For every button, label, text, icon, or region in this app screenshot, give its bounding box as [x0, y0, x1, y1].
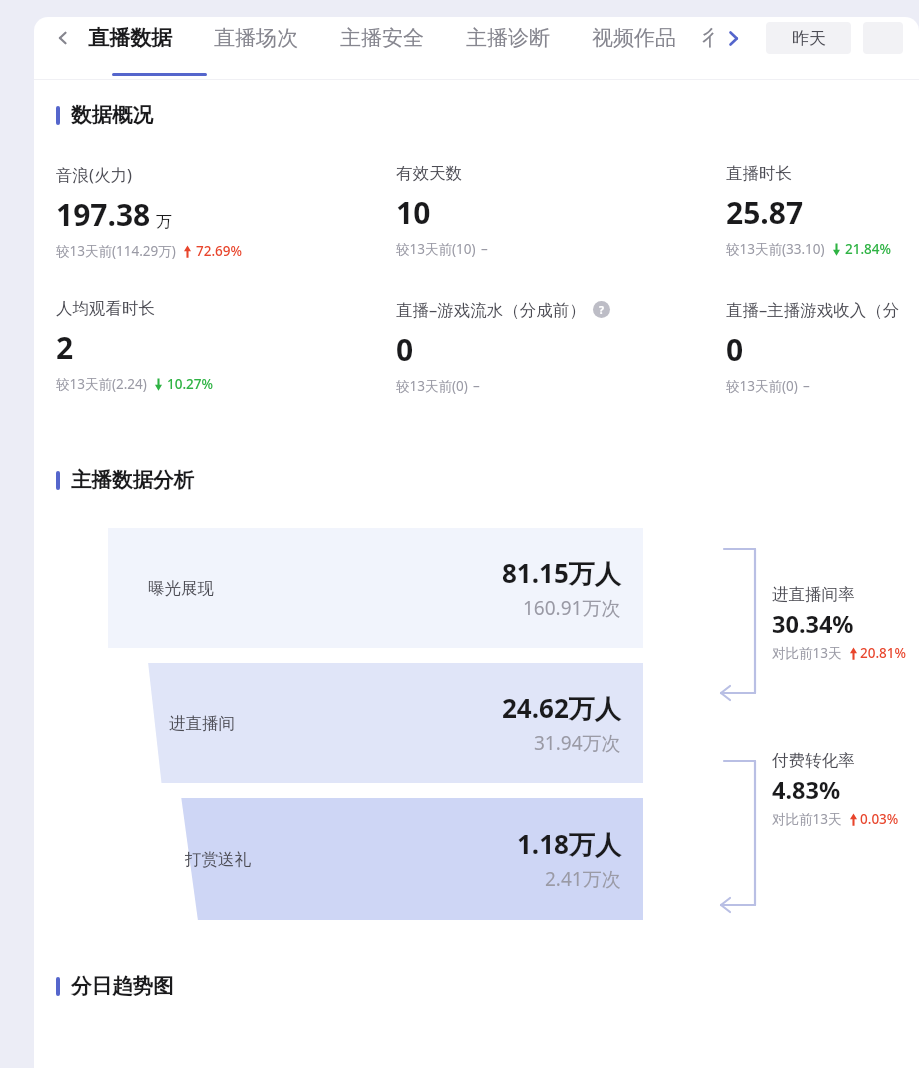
- staticText: 昨天: [792, 28, 826, 49]
- staticText: 1.18万人: [517, 826, 621, 862]
- staticText: 直播数据: [88, 25, 172, 51]
- staticText: 曝光展现: [148, 578, 214, 599]
- staticText: 197.38: [56, 194, 151, 235]
- button[interactable]: 昨天: [766, 22, 851, 54]
- button[interactable]: 打赏送礼: [108, 798, 643, 920]
- staticText: –: [803, 377, 810, 395]
- staticText: 25.87: [726, 192, 804, 233]
- staticText: 对比前13天: [772, 810, 842, 828]
- button[interactable]: 进直播间: [108, 663, 643, 783]
- staticText: 21.84%: [845, 240, 892, 258]
- staticText: 打赏送礼: [185, 849, 251, 870]
- staticText: 进直播间率: [772, 584, 855, 605]
- staticText: 对比前13天: [772, 644, 842, 662]
- staticText: 较13天前(0): [396, 377, 468, 395]
- button[interactable]: 视频作品: [588, 17, 680, 59]
- staticText: 视频作品: [592, 25, 676, 51]
- button[interactable]: More tabs: [720, 25, 746, 51]
- staticText: 分日趋势图: [71, 973, 174, 999]
- staticText: 彳: [702, 25, 714, 51]
- staticText: –: [481, 240, 488, 258]
- staticText: 4.83%: [772, 774, 841, 806]
- staticText: 有效天数: [396, 163, 462, 184]
- staticText: 进直播间: [169, 713, 235, 734]
- staticText: 10.27%: [167, 375, 214, 393]
- staticText: 较13天前(10): [396, 240, 476, 258]
- staticText: 2: [56, 327, 74, 368]
- staticText: 万: [156, 212, 172, 232]
- staticText: 音浪(火力): [56, 163, 132, 186]
- staticText: 付费转化率: [772, 750, 855, 771]
- staticText: 直播–主播游戏收入（分: [726, 298, 900, 321]
- button[interactable]: 直播数据: [84, 17, 176, 59]
- staticText: 30.34%: [772, 608, 854, 640]
- staticText: –: [473, 377, 480, 395]
- staticText: 直播时长: [726, 163, 792, 184]
- staticText: 2.41万次: [545, 866, 621, 892]
- staticText: ?: [599, 303, 605, 317]
- staticText: 较13天前(2.24): [56, 375, 147, 393]
- staticText: 较13天前(33.10): [726, 240, 825, 258]
- staticText: 直播场次: [214, 25, 298, 51]
- staticText: 72.69%: [196, 242, 243, 260]
- staticText: 直播–游戏流水（分成前）: [396, 298, 586, 321]
- button[interactable]: Help: [593, 301, 610, 318]
- button[interactable]: 曝光展现: [108, 528, 643, 648]
- staticText: 160.91万次: [523, 595, 621, 621]
- staticText: 20.81%: [860, 644, 907, 662]
- button[interactable]: 主播诊断: [462, 17, 554, 59]
- staticText: 0: [726, 329, 744, 370]
- button[interactable]: Back: [50, 25, 76, 51]
- staticText: 较13天前(114.29万): [56, 242, 176, 260]
- staticText: 较13天前(0): [726, 377, 798, 395]
- staticText: 数据概况: [71, 102, 153, 128]
- button[interactable]: 主播安全: [336, 17, 428, 59]
- staticText: 31.94万次: [534, 730, 621, 756]
- staticText: 81.15万人: [502, 555, 621, 591]
- staticText: 主播诊断: [466, 25, 550, 51]
- staticText: 主播安全: [340, 25, 424, 51]
- staticText: 主播数据分析: [71, 467, 194, 493]
- staticText: 人均观看时长: [56, 298, 155, 319]
- staticText: 0: [396, 329, 414, 370]
- staticText: 10: [396, 192, 431, 233]
- staticText: 24.62万人: [502, 690, 621, 726]
- button[interactable]: 直播场次: [210, 17, 302, 59]
- staticText: 0.03%: [860, 810, 899, 828]
